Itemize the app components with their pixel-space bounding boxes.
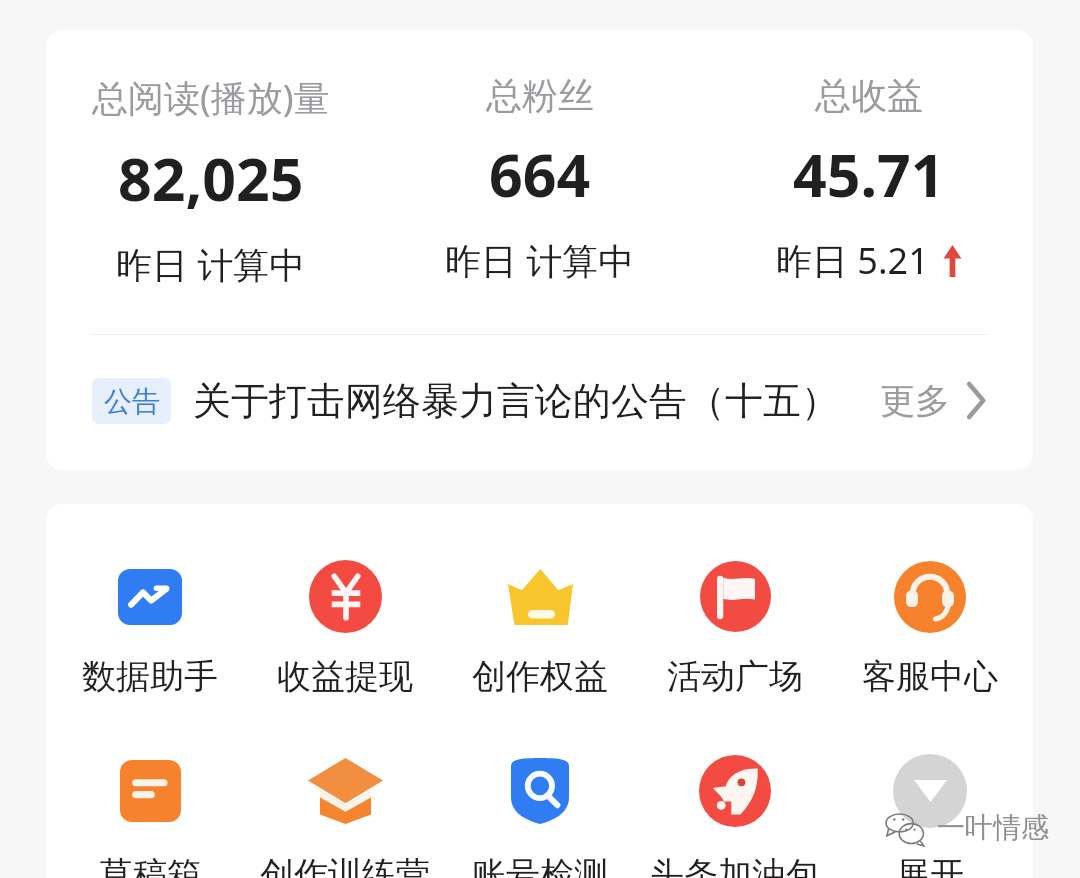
- other: 数据助手: [118, 569, 182, 625]
- other: 收益提现: [309, 560, 382, 633]
- button[interactable]: 活动广场: [638, 550, 832, 710]
- staticText: 82,025: [118, 138, 304, 218]
- staticText: 关于打击网络暴力言论的公告（十五）: [193, 377, 839, 425]
- button[interactable]: 收益提现: [248, 550, 442, 710]
- staticText: 展开: [896, 853, 964, 878]
- staticText: 664: [489, 134, 591, 214]
- staticText: 收益提现: [277, 655, 413, 698]
- other: 客服中心: [894, 561, 966, 633]
- staticText: 账号检测: [472, 853, 608, 878]
- staticText: 客服中心: [862, 655, 998, 698]
- staticText: 昨日 计算中: [445, 236, 635, 285]
- staticText: 总粉丝: [486, 73, 594, 118]
- button[interactable]: 公告: [46, 348, 1033, 453]
- staticText: 头条加油包: [650, 853, 820, 878]
- other: 创作训练营: [308, 758, 383, 824]
- button[interactable]: 草稿箱: [53, 744, 247, 878]
- staticText: 公告: [104, 384, 160, 419]
- staticText: 总收益: [815, 73, 923, 118]
- button[interactable]: 创作训练营: [248, 744, 442, 878]
- staticText: 昨日 计算中: [116, 240, 306, 289]
- other: 头条加油包: [699, 755, 771, 827]
- staticText: 创作权益: [472, 655, 608, 698]
- button[interactable]: 总粉丝: [375, 73, 704, 285]
- staticText: 更多: [880, 379, 950, 423]
- staticText: 昨日 5.21: [776, 236, 929, 285]
- staticText: 草稿箱: [99, 853, 201, 878]
- staticText: 45.71: [793, 134, 945, 214]
- button[interactable]: 客服中心: [833, 550, 1027, 710]
- staticText: 一叶情感: [937, 810, 1049, 845]
- button[interactable]: 头条加油包: [638, 744, 832, 878]
- staticText: 总阅读(播放)量: [92, 73, 330, 122]
- other: 账号检测: [511, 758, 569, 824]
- staticText: 活动广场: [667, 655, 803, 698]
- other: 创作权益: [508, 569, 573, 625]
- other: 草稿箱: [120, 760, 181, 822]
- staticText: 数据助手: [82, 655, 218, 698]
- button[interactable]: 总阅读(播放)量: [46, 73, 375, 289]
- button[interactable]: 总收益: [704, 73, 1033, 285]
- button[interactable]: 创作权益: [443, 550, 637, 710]
- button[interactable]: 展开: [833, 744, 1027, 878]
- staticText: 创作训练营: [260, 853, 430, 878]
- other: 活动广场: [700, 561, 771, 632]
- other: 展开: [893, 754, 967, 828]
- button[interactable]: 账号检测: [443, 744, 637, 878]
- button[interactable]: 数据助手: [53, 550, 247, 710]
